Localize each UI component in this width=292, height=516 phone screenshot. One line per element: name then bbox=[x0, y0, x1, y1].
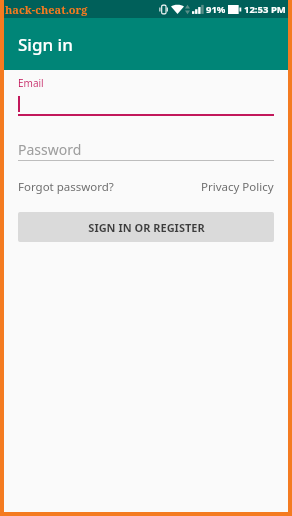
button[interactable]: Forgot password? bbox=[18, 179, 114, 195]
staticText: Privacy Policy bbox=[201, 179, 274, 195]
staticText: 91% bbox=[206, 3, 226, 16]
staticText: Email bbox=[18, 76, 44, 90]
button[interactable]: Privacy Policy bbox=[201, 179, 274, 195]
staticText: Forgot password? bbox=[18, 179, 114, 195]
staticText: SIGN IN OR REGISTER bbox=[88, 220, 205, 235]
button[interactable]: Password bbox=[18, 138, 274, 161]
staticText: 12:53 PM bbox=[244, 3, 286, 16]
staticText: hack-cheat.org bbox=[5, 2, 88, 17]
button[interactable]: Email bbox=[18, 76, 274, 116]
staticText: Password bbox=[18, 140, 82, 159]
button[interactable]: SIGN IN OR REGISTER bbox=[18, 212, 274, 242]
staticText: Sign in bbox=[18, 33, 73, 56]
